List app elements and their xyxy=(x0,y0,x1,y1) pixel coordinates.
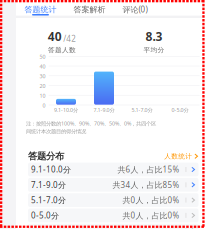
staticText: 0-5.0分 xyxy=(171,106,188,114)
button[interactable]: 9.1-10.0分 xyxy=(28,163,198,176)
staticText: 人数统计 xyxy=(164,152,192,160)
staticText: 10 xyxy=(39,92,45,99)
button[interactable]: 答案解析 xyxy=(73,5,105,15)
staticText: 0-5.0分 xyxy=(31,210,59,221)
staticText: 答题人数 xyxy=(48,46,76,54)
staticText: 共0人，占比0% xyxy=(123,195,180,205)
button[interactable]: 人数统计 xyxy=(164,152,198,160)
staticText: 7.1-9.0分 xyxy=(31,179,66,190)
staticText: 40 xyxy=(48,28,62,44)
staticText: 9.1-10.0分 xyxy=(31,164,71,175)
button[interactable]: 答题统计 xyxy=(24,5,56,15)
staticText: 评论(0) xyxy=(122,4,147,15)
staticText: /42 xyxy=(63,33,76,44)
staticText: 共34人，占比85% xyxy=(113,179,180,190)
staticText: 0 xyxy=(42,102,45,109)
button[interactable]: 评论(0) xyxy=(122,5,147,15)
button[interactable] xyxy=(28,224,198,229)
staticText: 7.1-9.0分 xyxy=(93,106,114,114)
staticText: 平均分 xyxy=(143,46,164,54)
staticText: 间统计本次题目的得分情况 xyxy=(26,128,86,135)
button[interactable]: 5.1-7.0分 xyxy=(28,193,198,207)
staticText: 共0人，占比0% xyxy=(123,210,180,221)
button[interactable]: 0-5.0分 xyxy=(28,208,198,222)
staticText: 8.3 xyxy=(145,28,162,44)
staticText: 5.1-7.0分 xyxy=(131,106,152,114)
staticText: 50 xyxy=(39,53,45,60)
staticText: 40 xyxy=(39,63,45,70)
button[interactable]: 7.1-9.0分 xyxy=(28,178,198,192)
staticText: 答题统计 xyxy=(24,5,56,14)
staticText: 30 xyxy=(39,73,45,80)
staticText: 答案解析 xyxy=(73,5,105,14)
staticText: 5.1-7.0分 xyxy=(31,195,66,205)
staticText: 9.1-10.0分 xyxy=(54,106,78,114)
staticText: 共6人，占比15% xyxy=(118,164,180,175)
staticText: 20 xyxy=(39,82,45,89)
staticText: 注：按照分数的100%、90%、70%、50%、0%，共四个区 xyxy=(26,120,156,127)
staticText: 答题分布 xyxy=(28,150,64,162)
